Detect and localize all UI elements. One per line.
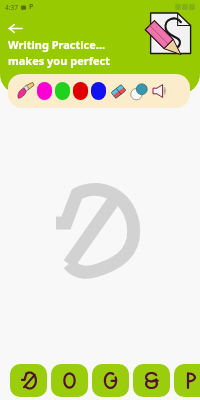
button[interactable]: Letter 1 <box>10 364 47 397</box>
staticText: Writing Practice... <box>8 37 106 52</box>
button[interactable]: Clear canvas <box>130 82 149 101</box>
button[interactable]: Letter 4 <box>133 364 170 397</box>
button[interactable]: Play sound <box>151 81 171 101</box>
button[interactable]: Colour <box>55 82 70 100</box>
button[interactable]: Letter 5 <box>174 364 200 397</box>
staticText: 4:37 <box>5 3 18 12</box>
button[interactable]: Colour <box>91 82 106 100</box>
button[interactable]: Colour <box>37 82 52 100</box>
button[interactable]: Letter 2 <box>51 364 88 397</box>
button[interactable]: Colour <box>73 82 88 100</box>
staticText: P <box>29 2 34 12</box>
staticText: makes you perfect <box>8 53 110 68</box>
button[interactable]: Back <box>4 17 26 39</box>
button[interactable]: Letter 3 <box>92 364 129 397</box>
button[interactable]: Brush <box>15 82 34 101</box>
button[interactable]: Eraser <box>109 82 128 101</box>
button[interactable]: Writing practice <box>142 6 196 60</box>
